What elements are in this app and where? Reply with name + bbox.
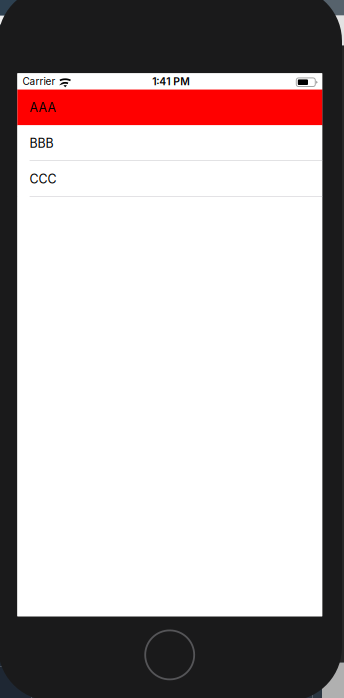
staticText: AAA <box>30 100 57 115</box>
staticText: CCC <box>30 171 57 186</box>
staticText: BBB <box>30 136 54 151</box>
button[interactable]: CCC <box>17 161 322 197</box>
staticText: 1:41 PM <box>152 75 190 88</box>
button[interactable]: BBB <box>17 125 322 161</box>
staticText: Carrier <box>23 75 56 87</box>
button[interactable]: AAA <box>17 90 322 125</box>
